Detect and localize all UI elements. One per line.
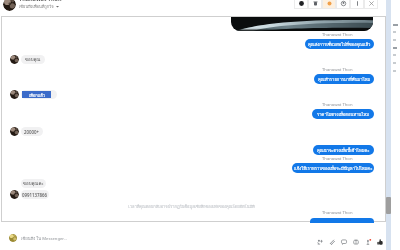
button[interactable]: 0991137866 [21,190,49,199]
staticText: Thanawat Thon [322,210,353,216]
staticText: เลือกแล้ว [29,92,45,98]
staticText: แจ้งให้เราทราบของเมื่อจะมีปัญหาไปไหมคะ [294,165,373,172]
button[interactable]: คุณทำรายการมาที่คืนมาไหม [314,74,374,84]
staticText: คุณทำรายการมาที่คืนมาไหม [318,76,371,83]
button[interactable]: ขอบคุณ [21,55,45,64]
button[interactable]: Attach file [328,238,335,245]
staticText: 0991137866 [22,192,48,198]
button[interactable]: Account [336,0,350,9]
button[interactable]: Extensions [322,0,336,9]
button[interactable]: แจ้งให้เราทราบของเมื่อจะมีปัญหาไปไหมคะ [292,163,374,173]
staticText: Thanawat Thon [19,0,62,2]
button[interactable] [21,90,57,99]
button[interactable]: คุณน่าจะตรงเมื่อนี้เข้าไหมคะ [313,145,374,155]
staticText: ขอบคุณ [25,56,41,63]
button[interactable]: คุณส่งการเชื่อมต่อไปที่ของคุณแล้ว [305,39,374,49]
button[interactable]: Security [294,0,308,9]
button[interactable] [310,218,374,223]
staticText: เขียนถึง ใน Messenger... [21,235,67,242]
staticText: Thanawat Thon [322,32,353,38]
button[interactable]: Downloads [308,0,322,9]
button[interactable]: ราคาไม่ตรงเมื่อตอนท่านไหม [312,109,374,119]
staticText: เวลาที่คุณตอบกลับอาจปรากฏในข้อมูลเชิงลึก… [128,203,255,209]
staticText: เขียนถึงเพื่อนที่ถูกใจ [19,3,54,9]
button[interactable]: Stickers [352,238,359,245]
staticText: Thanawat Thon [322,102,353,108]
staticText: คุณส่งการเชื่อมต่อไปที่ของคุณแล้ว [308,41,371,48]
staticText: คุณน่าจะตรงเมื่อนี้เข้าไหมคะ [317,147,370,154]
staticText: ราคาไม่ตรงเมื่อตอนท่านไหม [317,111,370,118]
button[interactable]: Voice message [364,238,371,245]
button[interactable]: Menu [350,0,364,9]
button[interactable]: Close [364,0,378,9]
button[interactable]: Quick replies [316,238,323,245]
staticText: Thanawat Thon [322,67,353,73]
staticText: Thanawat Thon [322,156,353,162]
button[interactable]: Like [376,238,383,245]
button[interactable]: Saved replies [340,238,347,245]
button[interactable]: 20000+ [21,127,43,136]
button[interactable]: ขอบคุณคะ [21,179,46,188]
staticText: 20000+ [24,129,40,135]
staticText: ขอบคุณคะ [23,180,44,187]
